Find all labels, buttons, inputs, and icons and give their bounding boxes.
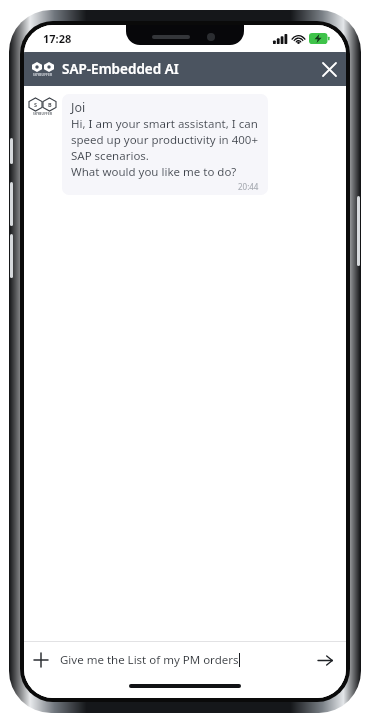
staticText: SKYBUFFER [33,112,53,116]
button[interactable]: Add attachment [24,643,58,677]
staticText: Joi [71,99,86,116]
staticText: SKYBUFFER [33,73,53,77]
staticText: Hi, I am your smart assistant, I can spe… [71,116,259,180]
staticText: SAP-Embedded AI [62,60,179,78]
staticText: 20:44 [238,181,259,192]
staticText: S [34,101,38,108]
button[interactable]: Send [308,643,342,677]
staticText: 17:28 [43,31,72,46]
button[interactable]: Close [312,52,346,86]
button[interactable]: Joi [62,94,268,195]
staticText: Give me the List of my PM orders [60,652,239,668]
staticText: B [48,101,52,108]
